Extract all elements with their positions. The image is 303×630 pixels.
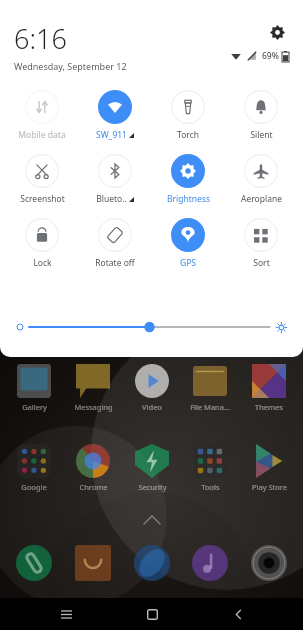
staticText: File Mana… [190,402,230,412]
staticText: Gallery [22,402,47,412]
button[interactable]: Chrome [65,444,121,492]
button[interactable]: Music [182,545,238,581]
button[interactable]: File Mana… [182,364,238,412]
staticText: Themes [255,402,283,412]
button[interactable]: Back [195,598,281,630]
button[interactable]: Rotate off [80,218,150,269]
button[interactable]: Shop [65,545,121,581]
button[interactable]: Messaging [65,364,121,412]
staticText: Google [21,482,47,492]
staticText: Messaging [74,402,113,412]
staticText: Sort [253,257,270,269]
staticText: Wednesday, September 12 [14,60,127,72]
staticText: Lock [33,257,52,269]
staticText: Torch [177,129,199,141]
staticText: Mobile data [18,129,66,141]
button[interactable]: SW_911 [80,90,150,141]
button[interactable]: Browser [124,545,180,581]
button[interactable]: Home [109,598,195,630]
button[interactable]: Recents [23,598,109,630]
button[interactable]: Brightness [153,154,223,205]
staticText: Security [138,482,167,492]
button[interactable]: Video [124,364,180,412]
button[interactable]: Themes [241,364,297,412]
staticText: Blueto.. [96,193,127,205]
staticText: Tools [201,482,220,492]
button[interactable]: Aeroplane [226,154,296,205]
staticText: Brightness [167,193,210,205]
staticText: 6:16 [14,20,67,57]
button[interactable]: Security [124,444,180,492]
button[interactable]: Play Store [241,444,297,492]
button[interactable]: Google [6,444,62,492]
staticText: Silent [250,129,273,141]
staticText: Play Store [252,482,287,492]
staticText: Chrome [79,482,108,492]
button[interactable]: Lock [7,218,77,269]
button[interactable]: Settings [265,20,289,44]
button[interactable]: Brightness [16,315,287,339]
button[interactable]: Blueto.. [80,154,150,205]
button[interactable]: GPS [153,218,223,269]
button[interactable]: Gallery [6,364,62,412]
button[interactable]: Phone [6,545,62,581]
staticText: GPS [180,257,196,269]
button[interactable]: Screenshot [7,154,77,205]
button[interactable]: Camera [241,545,297,581]
button[interactable]: Torch [153,90,223,141]
staticText: SW_911 [96,129,127,141]
button[interactable]: Mobile data [7,90,77,141]
staticText: 69% [262,50,279,62]
button[interactable]: Sort [226,218,296,269]
button[interactable]: Tools [182,444,238,492]
staticText: Video [142,402,162,412]
staticText: Aeroplane [241,193,282,205]
staticText: Rotate off [95,257,135,269]
button[interactable]: Silent [226,90,296,141]
staticText: Screenshot [20,193,65,205]
